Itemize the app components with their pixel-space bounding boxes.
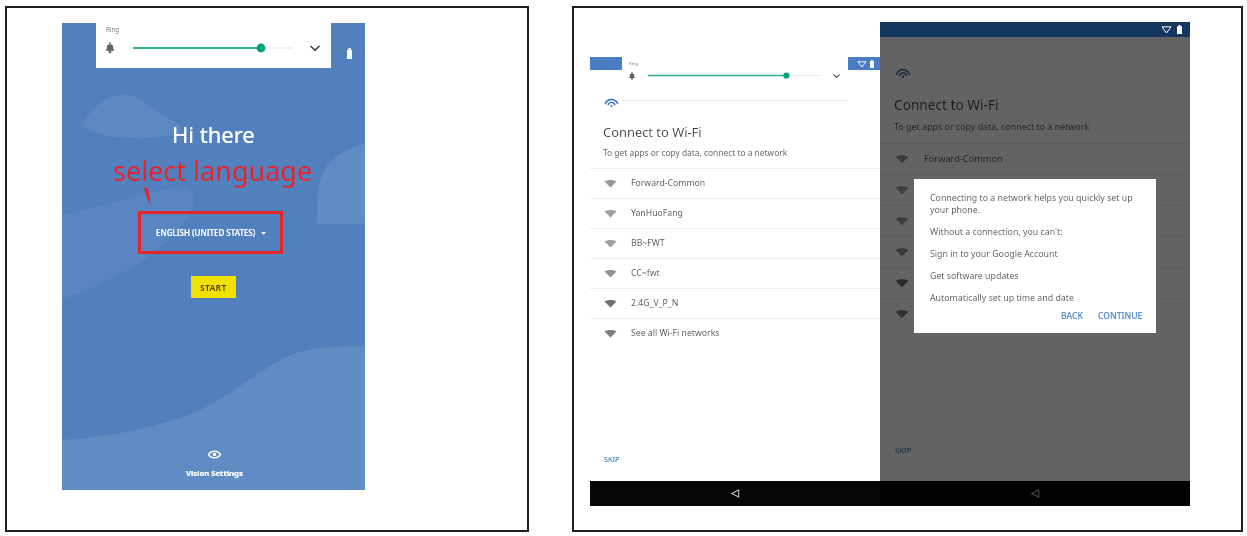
staticText: CC~fwt [924,245,955,258]
staticText: CC~fwt [631,267,660,279]
button[interactable]: YanHuoFang [880,174,1190,205]
staticText: BB~FWT [631,237,665,249]
button[interactable]: YanHuoFang [590,198,880,228]
staticText: Vision Settings [186,468,243,478]
staticText: To get apps or copy data, connect to a n… [894,120,1090,132]
staticText: Hi there [172,119,255,149]
staticText: SKIP [604,454,620,464]
button[interactable]: CC~fwt [590,258,880,288]
staticText: BACK [1061,310,1083,322]
button[interactable]: CC~fwt [880,236,1190,267]
button[interactable]: 2.4G_V_P_N [880,267,1190,298]
staticText: YanHuoFang [924,183,980,196]
staticText: ENGLISH (UNITED STATES) [156,227,256,238]
staticText: Connecting to a network helps you quickl… [930,192,1133,204]
button[interactable]: Vision Settings [180,450,248,490]
staticText: Automatically set up time and date [930,292,1074,304]
button[interactable]: Expand volume panel [307,40,323,56]
staticText: See all Wi-Fi networks [631,327,720,339]
staticText: SKIP [895,445,912,455]
button[interactable]: ENGLISH (UNITED STATES) [138,211,284,254]
staticText: 2.4G_V_P_N [631,297,679,309]
button[interactable]: Expand volume panel [831,70,842,81]
staticText: 2.4G_V_P_N [924,276,975,289]
button[interactable]: See all Wi-Fi networks [590,318,880,348]
staticText: Connect to Wi-Fi [894,95,999,114]
staticText: your phone. [930,204,981,216]
button[interactable]: See all Wi-Fi networks [880,298,1190,329]
staticText: START [200,282,227,293]
button[interactable]: BACK [1054,305,1090,327]
staticText: CONTINUE [1098,310,1143,322]
staticText: Ring [106,25,120,33]
button[interactable]: 2.4G_V_P_N [590,288,880,318]
staticText: Without a connection, you can't: [930,226,1063,238]
staticText: BB~FWT [924,214,960,227]
staticText: YanHuoFang [631,207,683,219]
staticText: Sign in to your Google Account [930,248,1058,260]
staticText: Ring [629,60,639,66]
button[interactable]: START [191,276,236,298]
button[interactable]: SKIP [599,450,625,468]
button[interactable]: BB~FWT [590,228,880,258]
staticText: Forward-Common [631,177,706,189]
button[interactable]: BB~FWT [880,205,1190,236]
button[interactable]: Forward-Common [590,168,880,198]
staticText: Connect to Wi-Fi [603,123,702,141]
button[interactable]: SKIP [890,441,917,459]
button[interactable]: CONTINUE [1091,305,1150,327]
staticText: Get software updates [930,270,1019,282]
staticText: To get apps or copy data, connect to a n… [603,147,788,158]
button[interactable]: Forward-Common [880,143,1190,174]
staticText: select language [113,152,313,189]
staticText: Forward-Common [924,152,1003,165]
